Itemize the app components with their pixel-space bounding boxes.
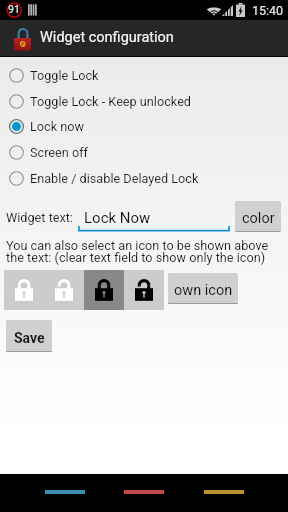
button[interactable]: Toggle Lock - Keep unlocked	[0, 88, 288, 114]
button[interactable]: Open lock, light icon	[44, 270, 84, 310]
button[interactable]: Lock now	[0, 113, 288, 139]
button[interactable]: Screen off	[0, 139, 288, 165]
staticText: 15:40	[252, 3, 284, 18]
staticText: own icon	[174, 282, 233, 299]
button[interactable]: own icon	[168, 273, 238, 304]
staticText: color	[242, 210, 275, 227]
button[interactable]: Save	[6, 320, 52, 352]
button[interactable]: Toggle Lock	[0, 62, 288, 88]
staticText: Widget configuration	[40, 29, 174, 46]
staticText: Enable / disable Delayed Lock	[30, 171, 199, 186]
button[interactable]: Back	[45, 474, 85, 512]
staticText: Toggle Lock	[30, 68, 99, 83]
button[interactable]: Enable / disable Delayed Lock	[0, 165, 288, 191]
staticText: Save	[14, 330, 45, 346]
staticText: Toggle Lock - Keep unlocked	[30, 94, 192, 109]
button[interactable]: Recent apps	[204, 474, 244, 512]
staticText: 91	[8, 3, 20, 15]
button[interactable]: color	[235, 201, 281, 232]
staticText: the text: (clear text field to show only…	[6, 250, 266, 265]
button[interactable]: Lock Now	[78, 202, 230, 230]
staticText: Lock Now	[84, 209, 151, 227]
staticText: Widget text:	[6, 210, 74, 225]
button[interactable]: Closed lock, light icon	[4, 270, 44, 310]
staticText: You can also select an icon to be shown …	[6, 238, 269, 253]
button[interactable]: Closed lock, dark icon	[84, 270, 124, 310]
staticText: Lock now	[30, 119, 85, 134]
button[interactable]: Open lock, dark icon	[124, 270, 164, 310]
staticText: Screen off	[30, 145, 89, 160]
button[interactable]: Home	[124, 474, 164, 512]
